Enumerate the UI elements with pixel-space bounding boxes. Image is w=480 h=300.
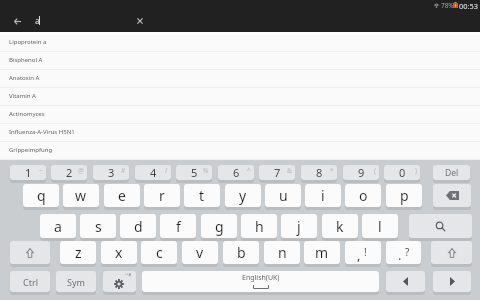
staticText: a <box>35 15 40 27</box>
button[interactable]: , <box>345 241 381 264</box>
button[interactable]: Anatoxin A <box>0 70 480 88</box>
staticText: o <box>359 186 368 205</box>
button[interactable]: Space <box>142 271 379 292</box>
staticText: r <box>159 186 165 205</box>
button[interactable]: a <box>40 214 76 238</box>
staticText: b <box>237 243 246 262</box>
button[interactable]: Influenza-A-Virus H5N1 <box>0 124 480 142</box>
staticText: Ctrl <box>23 276 38 288</box>
button[interactable]: 1 <box>10 165 46 180</box>
staticText: q <box>37 186 46 205</box>
button[interactable]: Back <box>9 13 25 29</box>
button[interactable]: j <box>281 214 317 238</box>
staticText: 2 <box>66 165 73 180</box>
staticText: Influenza-A-Virus H5N1 <box>9 128 75 136</box>
staticText: * <box>330 166 334 175</box>
button[interactable]: w <box>63 184 99 207</box>
staticText: ( <box>374 166 376 175</box>
staticText: & <box>287 166 292 175</box>
staticText: m <box>315 243 329 262</box>
button[interactable]: n <box>264 241 300 264</box>
button[interactable]: i <box>305 184 341 207</box>
button[interactable]: u <box>265 184 301 207</box>
button[interactable]: q <box>23 184 59 207</box>
button[interactable]: p <box>386 184 422 207</box>
staticText: ^ <box>247 166 251 175</box>
staticText: x <box>115 243 123 262</box>
button[interactable]: y <box>225 184 261 207</box>
staticText: 78% <box>441 1 454 10</box>
button[interactable]: k <box>322 214 358 238</box>
button[interactable]: Vitamin A <box>0 88 480 106</box>
button[interactable]: Shift <box>10 241 50 264</box>
button[interactable]: Sym <box>56 271 96 292</box>
button[interactable]: . <box>386 241 421 264</box>
button[interactable]: 3 <box>93 165 129 180</box>
staticText: g <box>215 217 224 236</box>
button[interactable]: x <box>101 241 137 264</box>
staticText: ? <box>405 245 410 259</box>
button[interactable]: z <box>60 241 96 264</box>
staticText: f <box>176 217 181 236</box>
button[interactable]: Cursor right <box>433 271 471 292</box>
button[interactable]: Ctrl <box>10 271 50 292</box>
button[interactable]: o <box>345 184 381 207</box>
button[interactable]: f <box>160 214 196 238</box>
staticText: d <box>134 217 143 236</box>
button[interactable]: Actinomyces <box>0 106 480 124</box>
staticText: 7 <box>274 165 281 180</box>
staticText: c <box>156 243 163 262</box>
button[interactable]: Backspace <box>433 184 471 207</box>
button[interactable]: e <box>104 184 140 207</box>
button[interactable]: 2 <box>51 165 87 180</box>
button[interactable]: 0 <box>384 165 420 180</box>
staticText: 8 <box>316 165 323 180</box>
staticText: s <box>95 217 102 236</box>
staticText: l <box>378 217 382 236</box>
button[interactable]: Bisphenol A <box>0 52 480 70</box>
button[interactable]: Del <box>433 165 470 180</box>
button[interactable]: g <box>201 214 237 238</box>
button[interactable]: Shift <box>431 241 472 264</box>
staticText: n <box>278 243 287 262</box>
button[interactable]: Search <box>409 214 472 238</box>
staticText: 0 <box>399 165 406 180</box>
staticText: 6 <box>233 165 240 180</box>
button[interactable]: Keyboard settings <box>103 271 136 292</box>
staticText: # <box>121 166 126 175</box>
button[interactable]: 7 <box>259 165 295 180</box>
button[interactable]: Grippeimpfung <box>0 142 480 160</box>
staticText: Anatoxin A <box>9 74 40 82</box>
staticText: 3 <box>108 165 115 180</box>
button[interactable]: d <box>120 214 156 238</box>
staticText: u <box>279 186 288 205</box>
button[interactable]: Cursor left <box>386 271 425 292</box>
button[interactable]: t <box>184 184 220 207</box>
staticText: 4 <box>150 165 157 180</box>
button[interactable]: r <box>144 184 180 207</box>
button[interactable]: b <box>223 241 259 264</box>
button[interactable]: v <box>182 241 218 264</box>
button[interactable]: l <box>362 214 398 238</box>
button[interactable]: h <box>241 214 277 238</box>
staticText: % <box>203 166 209 175</box>
staticText: @ <box>78 166 84 175</box>
button[interactable]: s <box>80 214 116 238</box>
button[interactable]: 5 <box>176 165 212 180</box>
staticText: Bisphenol A <box>9 56 43 64</box>
button[interactable]: m <box>304 241 340 264</box>
button[interactable]: 4 <box>135 165 171 180</box>
button[interactable]: c <box>141 241 177 264</box>
button[interactable]: Lipoprotein a <box>0 33 480 52</box>
staticText: Grippeimpfung <box>9 146 53 154</box>
button[interactable]: 8 <box>301 165 337 180</box>
button[interactable]: 6 <box>218 165 254 180</box>
staticText: p <box>400 186 409 205</box>
staticText: ! <box>364 245 367 259</box>
button[interactable]: 9 <box>343 165 379 180</box>
staticText: , <box>357 246 361 264</box>
staticText: k <box>336 217 344 236</box>
staticText: Actinomyces <box>9 110 45 118</box>
button[interactable]: Clear <box>132 13 148 29</box>
staticText: y <box>239 186 247 205</box>
